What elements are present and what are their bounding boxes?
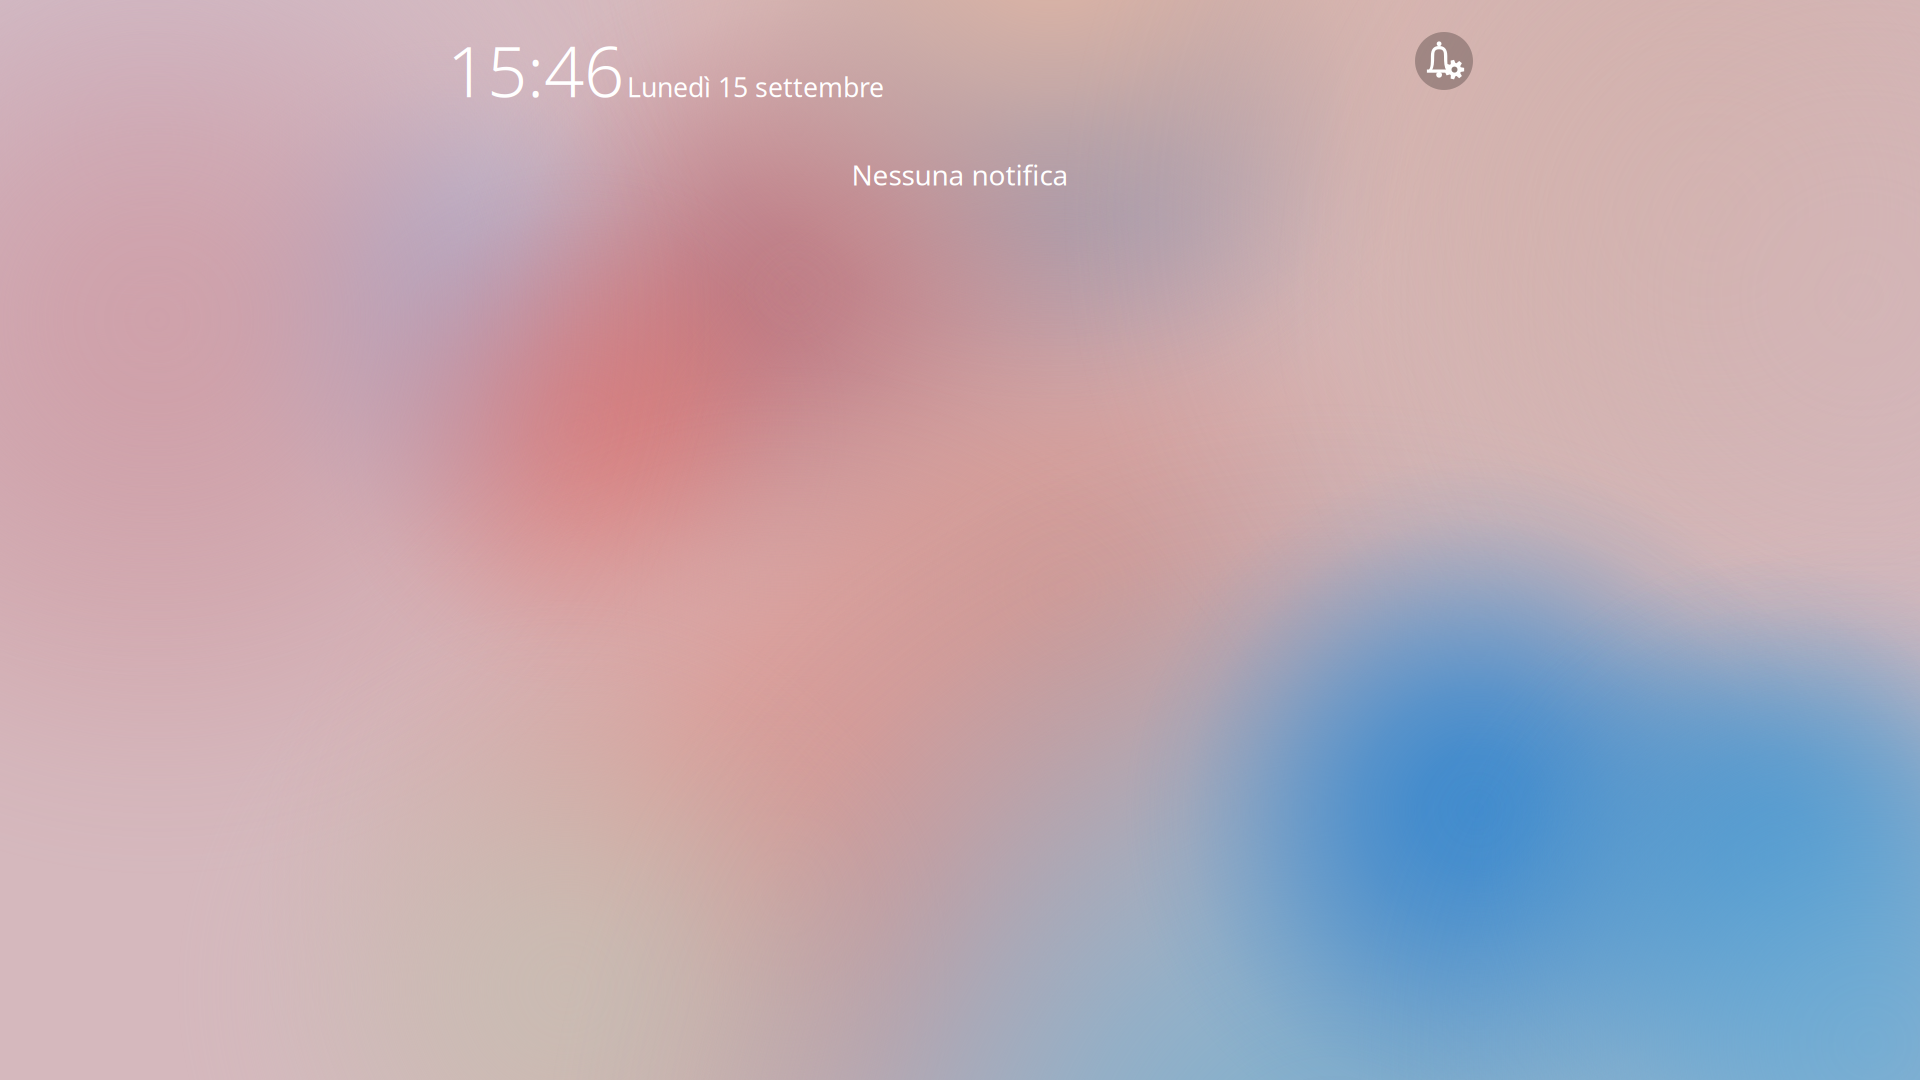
staticText: Lunedì 15 settembre [627,69,884,105]
button[interactable]: Impostazioni notifiche [1415,32,1473,90]
staticText: 15:46 [447,23,624,117]
staticText: Nessuna notifica [851,156,1068,193]
